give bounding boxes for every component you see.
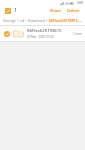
button[interactable]: Storage <box>3 18 16 23</box>
staticText: Storage <box>3 18 16 23</box>
staticText: MiFlash20190815 <box>27 28 62 34</box>
button[interactable]: Selected <box>3 30 10 37</box>
staticText: Download <box>28 18 45 23</box>
staticText: 3:09 <box>77 1 83 5</box>
button[interactable]: Download <box>28 18 45 23</box>
button[interactable]: MiFlash20190815.zip <box>49 18 82 23</box>
button[interactable]: Share <box>48 7 63 14</box>
staticText: sd <box>20 18 24 23</box>
staticText: 1 item <box>73 32 82 36</box>
button[interactable]: Selected <box>0 26 85 41</box>
staticText: Share <box>50 8 61 13</box>
staticText: MiFlash20190815.zip <box>49 18 82 23</box>
button[interactable]: Delete <box>65 7 82 14</box>
staticText: 1 <box>14 7 17 14</box>
staticText: Delete <box>67 8 80 13</box>
button[interactable]: sd <box>20 18 24 23</box>
staticText: 09 Mar 2020 07:44 <box>27 35 54 39</box>
button[interactable]: Select all <box>3 6 12 15</box>
